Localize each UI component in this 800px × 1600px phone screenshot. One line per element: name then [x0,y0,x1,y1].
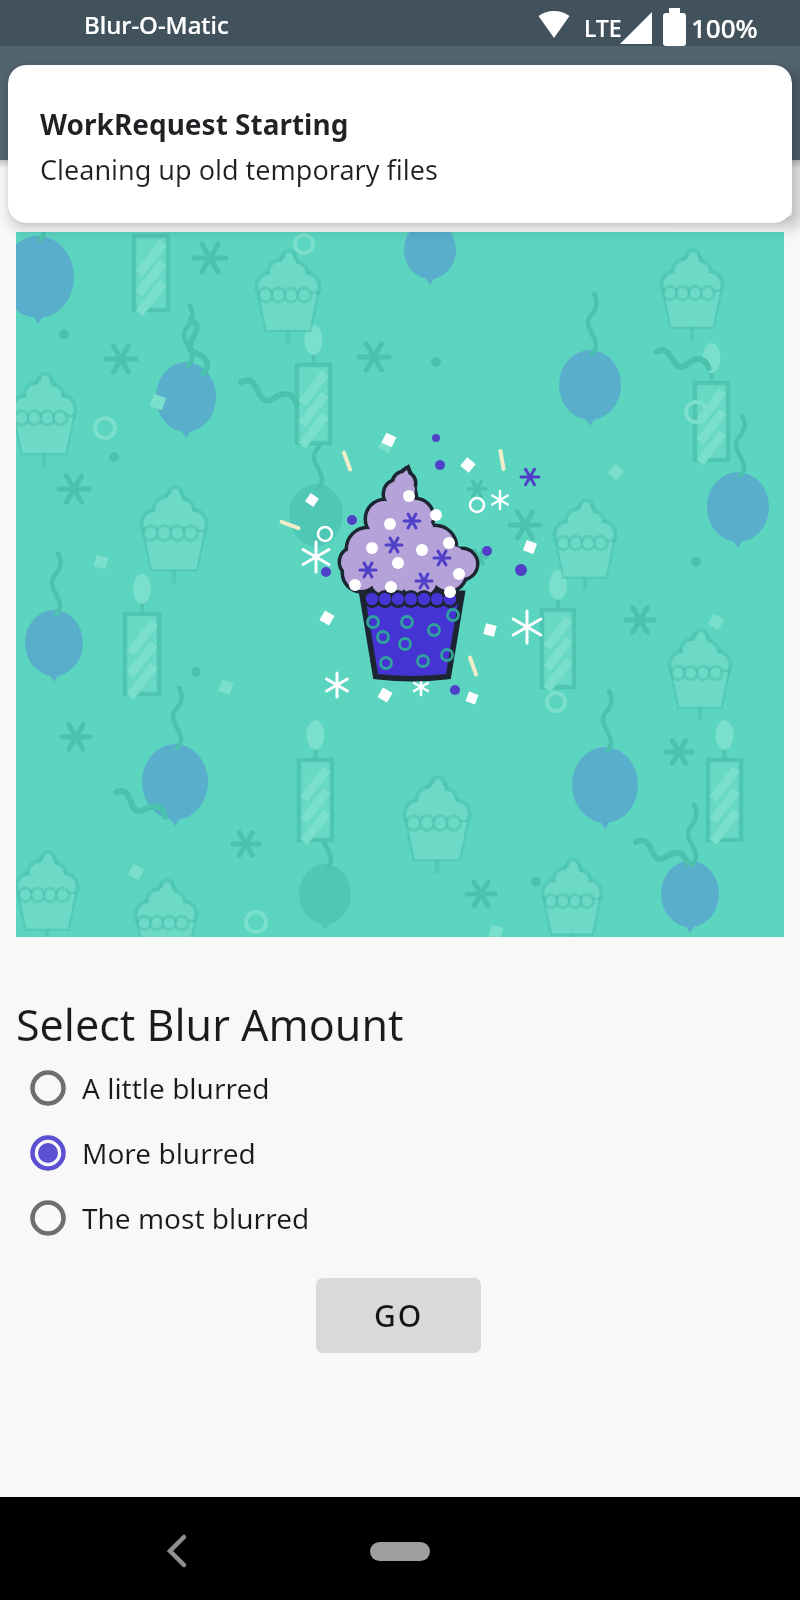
staticText: Select Blur Amount [16,995,404,1054]
button[interactable]: A little blurred [31,1066,270,1110]
button[interactable] [370,1542,430,1561]
button[interactable]: More blurred [31,1131,256,1175]
staticText: Cleaning up old temporary files [40,151,438,188]
staticText: The most blurred [82,1199,310,1237]
button[interactable]: GO [316,1278,481,1353]
staticText: More blurred [82,1134,256,1172]
button[interactable]: The most blurred [31,1196,310,1240]
staticText: Blur-O-Matic [84,8,229,41]
staticText: WorkRequest Starting [40,105,349,143]
staticText: LTE [584,12,622,43]
button[interactable] [155,1529,199,1573]
staticText: A little blurred [82,1069,270,1107]
staticText: 100% [691,10,758,45]
staticText: GO [374,1295,424,1336]
